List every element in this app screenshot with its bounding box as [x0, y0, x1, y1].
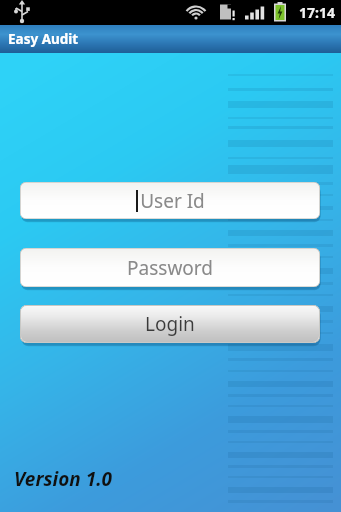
- staticText: Version 1.0: [14, 466, 113, 492]
- button[interactable]: Login: [20, 305, 320, 343]
- staticText: User Id: [140, 188, 205, 214]
- staticText: Easy Audit: [8, 30, 79, 48]
- button[interactable]: Password input: [20, 248, 320, 287]
- staticText: Login: [145, 311, 195, 337]
- button[interactable]: User Id input: [20, 182, 320, 219]
- staticText: 17:14: [299, 3, 335, 22]
- staticText: Password: [127, 255, 213, 281]
